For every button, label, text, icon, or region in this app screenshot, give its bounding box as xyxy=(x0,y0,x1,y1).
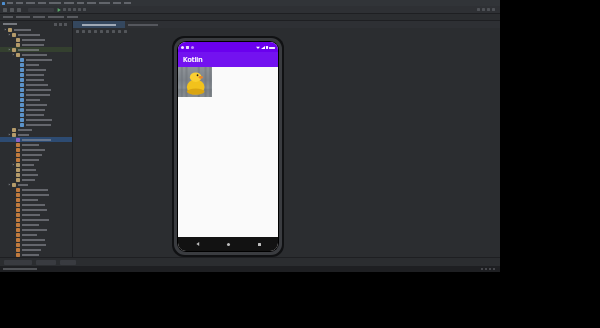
button[interactable] xyxy=(0,72,72,77)
button[interactable] xyxy=(0,247,72,252)
button[interactable] xyxy=(0,157,72,162)
button[interactable] xyxy=(0,242,72,247)
button[interactable]: Home xyxy=(217,237,239,251)
button[interactable] xyxy=(0,107,72,112)
button[interactable] xyxy=(0,142,72,147)
button[interactable] xyxy=(0,212,72,217)
button[interactable] xyxy=(0,172,72,177)
button[interactable] xyxy=(0,162,72,167)
button[interactable]: Back xyxy=(187,237,209,251)
button[interactable] xyxy=(0,217,72,222)
button[interactable] xyxy=(0,32,72,37)
button[interactable] xyxy=(0,207,72,212)
button[interactable] xyxy=(0,97,72,102)
button[interactable] xyxy=(73,21,125,28)
button[interactable] xyxy=(0,82,72,87)
button[interactable] xyxy=(0,147,72,152)
button[interactable] xyxy=(0,122,72,127)
button[interactable]: Rubber duck photo xyxy=(178,67,212,97)
button[interactable] xyxy=(0,42,72,47)
button[interactable] xyxy=(0,37,72,42)
button[interactable] xyxy=(0,132,72,137)
button[interactable] xyxy=(0,167,72,172)
button[interactable]: Run xyxy=(57,8,61,12)
button[interactable] xyxy=(0,47,72,52)
button[interactable] xyxy=(0,187,72,192)
button[interactable] xyxy=(0,112,72,117)
button[interactable] xyxy=(0,27,72,32)
button[interactable] xyxy=(0,87,72,92)
button[interactable] xyxy=(0,92,72,97)
button[interactable] xyxy=(0,222,72,227)
button[interactable] xyxy=(0,137,72,142)
button[interactable] xyxy=(0,52,72,57)
button[interactable] xyxy=(0,67,72,72)
button[interactable] xyxy=(0,177,72,182)
button[interactable] xyxy=(0,102,72,107)
button[interactable] xyxy=(0,197,72,202)
button[interactable] xyxy=(0,117,72,122)
button[interactable] xyxy=(0,77,72,82)
button[interactable]: Recent apps xyxy=(248,237,270,251)
button[interactable] xyxy=(0,227,72,232)
button[interactable] xyxy=(0,202,72,207)
button[interactable] xyxy=(0,127,72,132)
button[interactable] xyxy=(0,62,72,67)
button[interactable] xyxy=(0,252,72,257)
button[interactable] xyxy=(0,192,72,197)
button[interactable] xyxy=(0,237,72,242)
button[interactable] xyxy=(0,232,72,237)
button[interactable]: Kotlin xyxy=(178,52,278,67)
button[interactable] xyxy=(0,57,72,62)
